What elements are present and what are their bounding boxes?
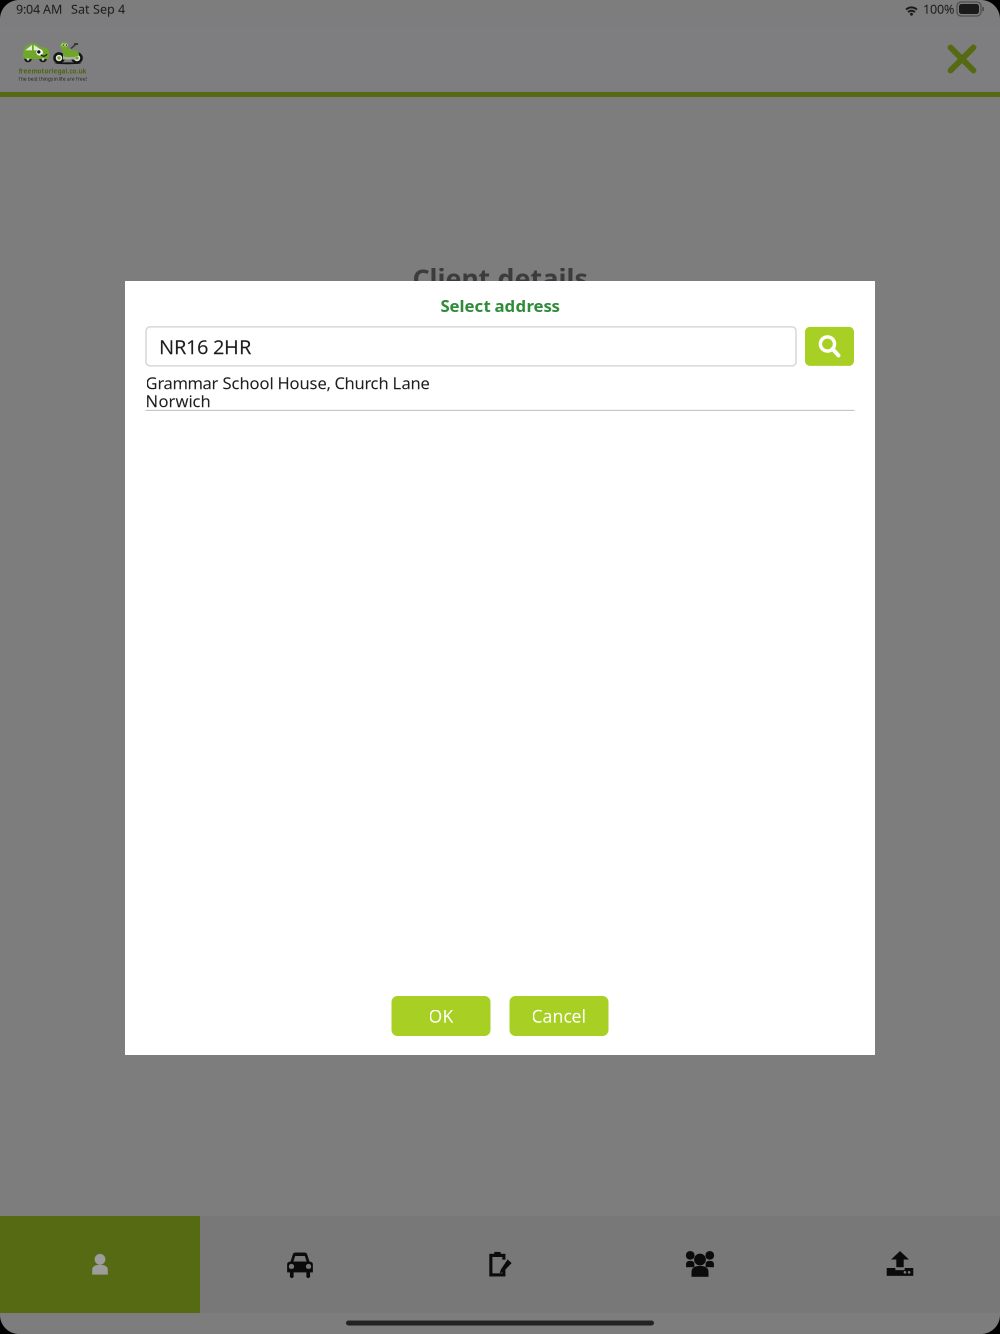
button[interactable]: Claim notes [400,1216,600,1313]
button[interactable]: Third parties [600,1216,800,1313]
button[interactable]: Cancel [509,996,608,1036]
button[interactable]: Upload documents [800,1216,1000,1313]
staticText: 9:04 AM Sat Sep 4 [16,0,125,18]
staticText: 100% [920,0,957,18]
button[interactable]: OK [391,996,490,1036]
staticText: NR16 2HR [159,333,251,360]
button[interactable]: Grammar School House, Church Lane [145,374,854,411]
staticText: Select address [440,294,559,317]
staticText: freemotorlegal.co.uk [18,67,86,75]
staticText: Norwich [145,390,210,412]
staticText: OK [428,1004,453,1028]
button[interactable]: Vehicle [200,1216,400,1313]
button[interactable]: Client details [0,1216,200,1313]
button[interactable]: Close [924,26,1000,92]
staticText: Cancel [531,1004,586,1028]
staticText: Client details [412,260,587,296]
button[interactable]: Search [805,327,854,366]
staticText: The best things in life are free! [18,76,87,82]
staticText: Grammar School House, Church Lane [145,372,429,394]
